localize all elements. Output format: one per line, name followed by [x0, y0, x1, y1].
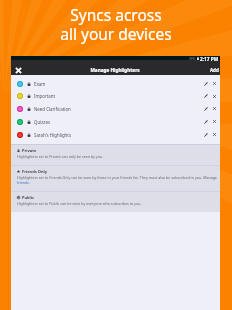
button[interactable]: Delete [210, 77, 219, 90]
staticText: Add [210, 67, 219, 73]
button[interactable]: Edit [201, 90, 210, 102]
staticText: Exam [34, 81, 46, 87]
button[interactable]: Delete [210, 90, 219, 102]
button[interactable]: Exam [11, 77, 220, 90]
staticText: Need Clarification [34, 106, 71, 112]
staticText: Syncs across all your devices [0, 4, 232, 44]
button[interactable]: Edit [201, 115, 210, 128]
staticText: Highlighters set to Friends Only can be … [17, 175, 217, 180]
button[interactable]: Need Clarification [11, 102, 220, 115]
staticText: Public [22, 195, 35, 200]
button[interactable]: Important [11, 90, 220, 102]
staticText: 2:17 PM [200, 56, 219, 61]
staticText: Highlighters set to Public can be seen b… [17, 201, 142, 206]
staticText: friends. [17, 180, 30, 185]
button[interactable]: Delete [210, 102, 219, 115]
staticText: Friends Only [22, 169, 47, 174]
staticText: Sarah's Highlights [34, 132, 72, 138]
button[interactable]: Public [11, 192, 220, 212]
staticText: Quizzes [34, 119, 50, 125]
button[interactable]: Quizzes [11, 115, 220, 128]
button[interactable]: Close [11, 65, 26, 75]
button[interactable]: Delete [210, 115, 219, 128]
staticText: Manage Highlighters [26, 67, 204, 73]
button[interactable]: Delete [210, 128, 219, 141]
staticText: Important [34, 93, 56, 99]
button[interactable]: Add [204, 65, 220, 75]
staticText: 39% [189, 57, 196, 61]
button[interactable]: Edit [201, 102, 210, 115]
button[interactable]: Friends Only [11, 166, 220, 191]
staticText: Highlighters set to Private can only be … [17, 154, 104, 159]
button[interactable]: Edit [201, 77, 210, 90]
button[interactable]: Edit [201, 128, 210, 141]
button[interactable]: Private [11, 145, 220, 165]
button[interactable]: Sarah's Highlights [11, 128, 220, 141]
staticText: Private [22, 148, 37, 153]
